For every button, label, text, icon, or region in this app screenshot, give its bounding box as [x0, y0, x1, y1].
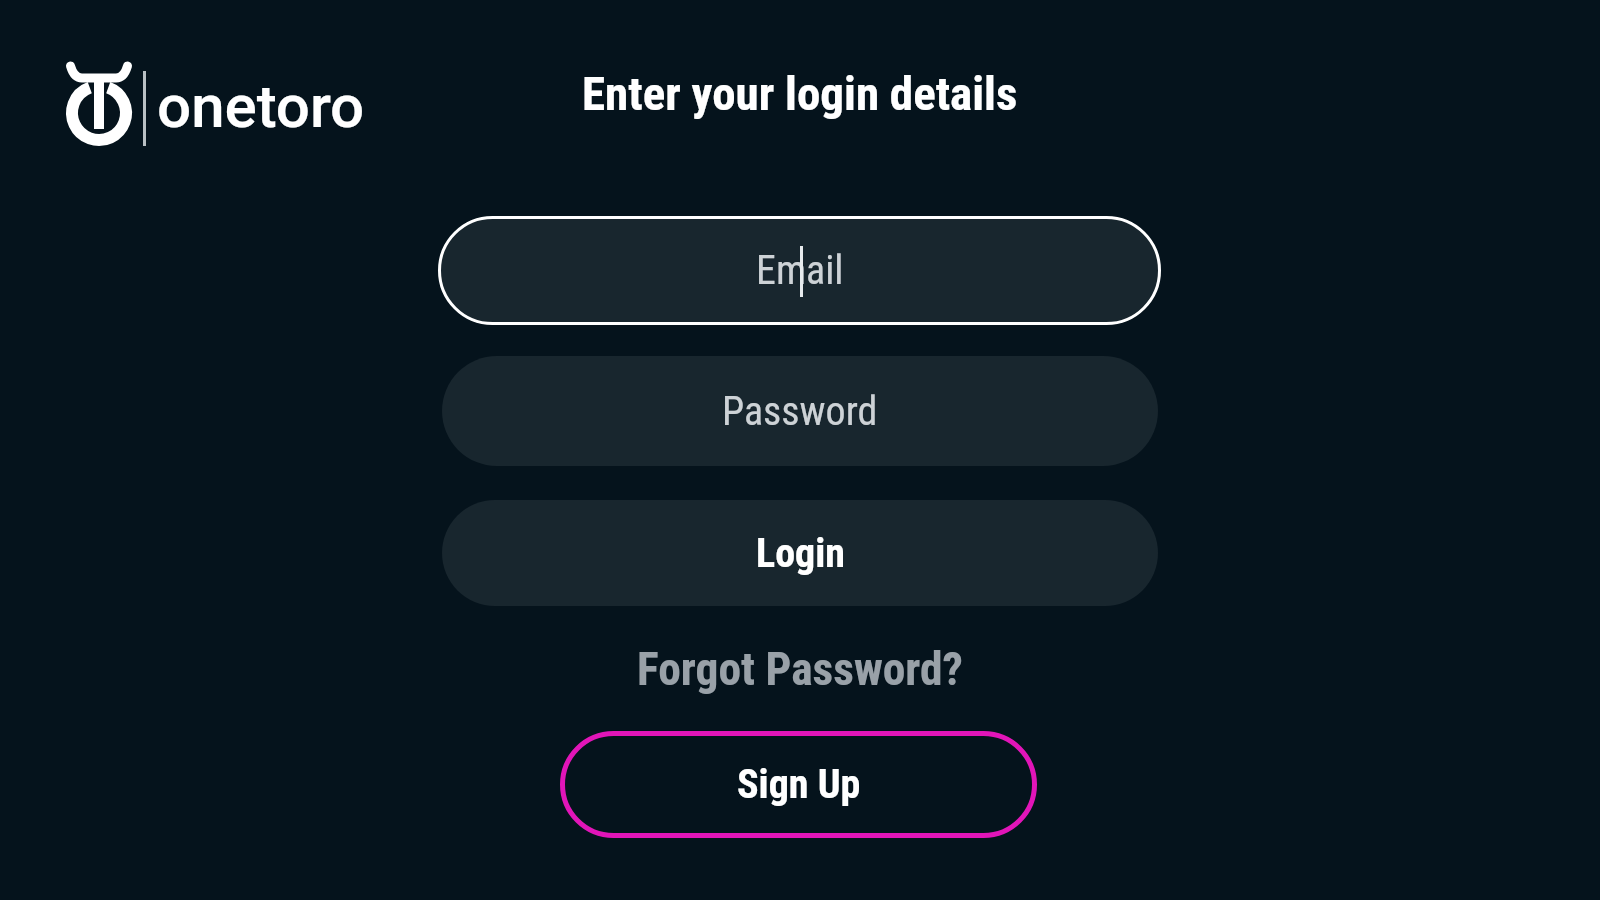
- staticText: onetoro: [157, 71, 365, 141]
- staticText: Email: [756, 247, 844, 294]
- button[interactable]: Email: [438, 216, 1161, 325]
- staticText: Login: [756, 530, 845, 577]
- staticText: Forgot Password?: [637, 643, 963, 696]
- button[interactable]: Forgot Password?: [637, 643, 963, 696]
- button[interactable]: Sign Up: [560, 731, 1037, 838]
- staticText: Sign Up: [737, 761, 861, 808]
- button[interactable]: Password: [442, 356, 1158, 466]
- button[interactable]: Login: [442, 500, 1158, 606]
- staticText: Password: [722, 388, 878, 435]
- staticText: Enter your login details: [582, 66, 1018, 121]
